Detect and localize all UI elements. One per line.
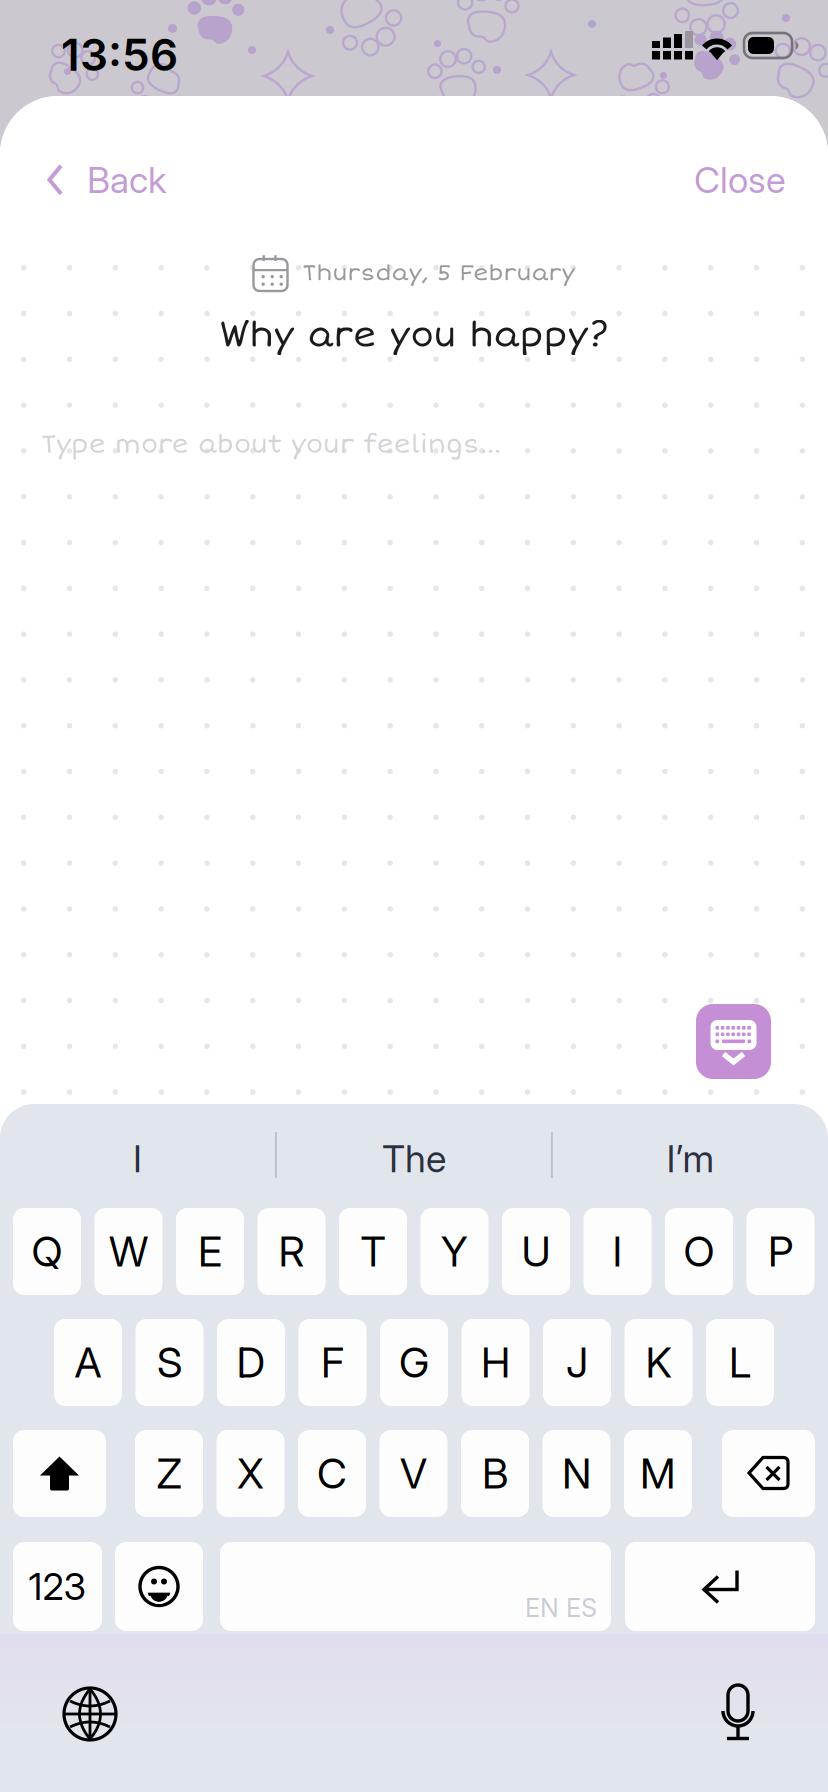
button[interactable]: Next keyboard [47, 1671, 133, 1757]
button[interactable]: Q [13, 1208, 81, 1295]
button[interactable]: Shift [13, 1430, 106, 1517]
button[interactable]: N [542, 1430, 610, 1517]
staticText: C [317, 1448, 347, 1498]
staticText: U [521, 1226, 550, 1276]
staticText: K [645, 1337, 671, 1387]
button[interactable]: G [380, 1319, 448, 1406]
button[interactable]: Delete [722, 1430, 815, 1517]
staticText: 13:56 [61, 28, 178, 81]
staticText: EN ES [525, 1592, 597, 1623]
button[interactable]: X [216, 1430, 284, 1517]
button[interactable]: O [665, 1208, 733, 1295]
staticText: I [133, 1136, 142, 1181]
staticText: F [321, 1337, 344, 1387]
button[interactable]: B [461, 1430, 529, 1517]
staticText: 123 [28, 1564, 86, 1609]
staticText: X [237, 1448, 264, 1498]
button[interactable]: P [746, 1208, 814, 1295]
staticText: Y [441, 1226, 468, 1276]
button[interactable]: Dictate [700, 1668, 776, 1758]
button[interactable]: U [502, 1208, 570, 1295]
button[interactable]: E [176, 1208, 244, 1295]
staticText: Why are you happy? [219, 314, 608, 357]
staticText: D [236, 1337, 265, 1387]
button[interactable]: M [624, 1430, 692, 1517]
staticText: V [400, 1448, 427, 1498]
button[interactable]: Space [220, 1542, 611, 1631]
button[interactable]: T [339, 1208, 407, 1295]
button[interactable]: Return [625, 1542, 815, 1631]
staticText: Type more about your feelings... [41, 429, 501, 460]
button[interactable]: L [706, 1319, 774, 1406]
staticText: The [382, 1136, 446, 1181]
button[interactable]: J [543, 1319, 611, 1406]
staticText: A [74, 1337, 101, 1387]
staticText: G [399, 1337, 429, 1387]
button[interactable]: Emoji [115, 1542, 203, 1631]
staticText: O [683, 1226, 714, 1276]
staticText: P [768, 1226, 793, 1276]
staticText: S [157, 1337, 182, 1387]
staticText: Z [156, 1448, 181, 1498]
staticText: H [481, 1337, 510, 1387]
staticText: W [109, 1226, 148, 1276]
button[interactable]: R [257, 1208, 325, 1295]
staticText: L [729, 1337, 751, 1387]
button[interactable]: Hide keyboard [696, 1004, 771, 1079]
button[interactable]: H [461, 1319, 529, 1406]
button[interactable]: Y [420, 1208, 488, 1295]
button[interactable]: F [298, 1319, 366, 1406]
button[interactable]: C [298, 1430, 366, 1517]
button[interactable]: V [379, 1430, 447, 1517]
staticText: E [198, 1226, 222, 1276]
button[interactable]: 123 [13, 1542, 102, 1631]
button[interactable]: D [217, 1319, 285, 1406]
staticText: N [562, 1448, 591, 1498]
staticText: I’m [666, 1136, 714, 1181]
staticText: J [566, 1337, 588, 1387]
button[interactable]: A [54, 1319, 122, 1406]
button[interactable]: K [624, 1319, 692, 1406]
staticText: Thursday, 5 February [302, 259, 574, 287]
button[interactable]: Back [0, 136, 191, 224]
button[interactable]: I [583, 1208, 651, 1295]
button[interactable]: W [94, 1208, 162, 1295]
staticText: Q [31, 1226, 62, 1276]
button[interactable]: S [135, 1319, 203, 1406]
button[interactable]: Z [135, 1430, 203, 1517]
staticText: I [612, 1226, 622, 1276]
staticText: Close [694, 158, 786, 202]
staticText: R [278, 1226, 304, 1276]
staticText: T [360, 1226, 385, 1276]
staticText: M [640, 1448, 676, 1498]
staticText: B [482, 1448, 508, 1498]
button[interactable]: Close [670, 136, 810, 224]
staticText: Back [87, 158, 167, 202]
